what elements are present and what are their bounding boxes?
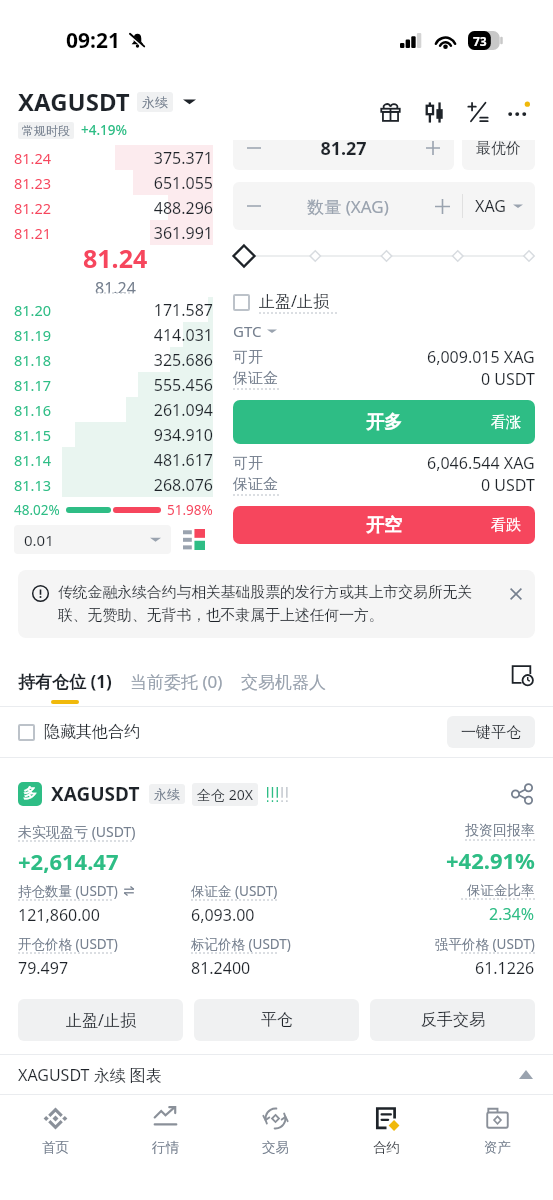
staticText: 保证金: [233, 369, 278, 388]
staticText: 325.686: [52, 349, 213, 371]
staticText: 2.34%: [489, 903, 535, 925]
button[interactable]: 81.27: [233, 140, 454, 170]
staticText: XAGUSDT: [18, 85, 130, 118]
button[interactable]: 开空: [233, 506, 535, 544]
button[interactable]: 81.24: [0, 145, 213, 170]
staticText: 79.497: [18, 957, 69, 979]
staticText: 平仓: [261, 1010, 293, 1030]
button[interactable]: 数量 (XAG): [233, 182, 535, 230]
staticText: 行情: [152, 1139, 179, 1156]
button[interactable]: Share position: [509, 781, 535, 807]
staticText: 6,009.015 XAG: [427, 346, 535, 368]
button[interactable]: GTC: [233, 321, 277, 341]
button[interactable]: 持有仓位 (1): [18, 670, 112, 704]
button[interactable]: 81.22: [0, 195, 213, 220]
staticText: 81.19: [14, 325, 52, 345]
staticText: 81.13: [14, 475, 52, 495]
staticText: 开空: [366, 514, 402, 537]
staticText: 261.094: [52, 399, 213, 421]
staticText: 09:21: [66, 26, 120, 55]
button[interactable]: Rewards: [374, 96, 406, 128]
staticText: 81.22: [14, 198, 52, 218]
staticText: 保证金 (USDT): [191, 882, 278, 900]
button[interactable]: 一键平仓: [447, 716, 535, 748]
button[interactable]: 止盈/止损: [18, 999, 183, 1041]
staticText: 未实现盈亏 (USDT): [18, 822, 136, 841]
staticText: 投资回报率: [465, 822, 535, 840]
button[interactable]: 最优价: [462, 140, 535, 170]
button[interactable]: 81.18: [0, 347, 213, 372]
button[interactable]: 平仓: [194, 999, 359, 1041]
staticText: 268.076: [52, 474, 213, 496]
button[interactable]: Close notice: [507, 585, 525, 603]
staticText: 强平价格 (USDT): [435, 935, 535, 953]
staticText: 81.24: [95, 277, 136, 293]
button[interactable]: Chart: [418, 96, 450, 128]
button[interactable]: Depth display mode: [183, 529, 205, 550]
button[interactable]: 交易机器人: [241, 683, 326, 704]
staticText: 交易: [262, 1139, 289, 1156]
button[interactable]: Calculator: [462, 96, 494, 128]
button[interactable]: 行情: [110, 1095, 220, 1200]
button[interactable]: 81.13: [0, 472, 213, 497]
staticText: 保证金比率: [467, 882, 535, 899]
button[interactable]: 隐藏其他合约: [18, 722, 140, 742]
staticText: 651.055: [52, 172, 213, 194]
button[interactable]: 反手交易: [370, 999, 535, 1041]
staticText: 资产: [484, 1139, 511, 1156]
staticText: 81.17: [14, 375, 52, 395]
button[interactable]: 81.17: [0, 372, 213, 397]
staticText: 首页: [42, 1139, 69, 1156]
staticText: 48.02%: [14, 501, 60, 519]
button[interactable]: Order history: [509, 662, 535, 688]
button[interactable]: 合约: [331, 1095, 442, 1200]
staticText: 81.24: [14, 148, 52, 168]
button[interactable]: 0.01: [14, 525, 171, 554]
staticText: 止盈/止损: [66, 1009, 136, 1031]
button[interactable]: More options: [502, 96, 534, 128]
staticText: 多: [23, 785, 37, 803]
button[interactable]: 81.23: [0, 170, 213, 195]
staticText: 保证金: [233, 475, 278, 494]
staticText: 81.14: [14, 450, 52, 470]
staticText: 永续: [142, 94, 168, 110]
staticText: 永续: [154, 786, 180, 802]
button[interactable]: 首页: [0, 1095, 110, 1200]
button[interactable]: 开多: [233, 400, 535, 444]
staticText: 934.910: [52, 424, 213, 446]
staticText: 488.296: [52, 197, 213, 219]
staticText: 看跌: [491, 516, 521, 535]
button[interactable]: 81.14: [0, 447, 213, 472]
staticText: XAGUSDT 永续 图表: [18, 1064, 162, 1086]
staticText: 看涨: [491, 413, 521, 432]
staticText: 361.991: [52, 222, 213, 244]
staticText: 传统金融永续合约与相关基础股票的发行方或其上市交易所无关联、无赞助、无背书，也不…: [58, 583, 489, 625]
staticText: 隐藏其他合约: [44, 722, 140, 742]
button[interactable]: XAGUSDT 永续 图表: [0, 1055, 553, 1094]
button[interactable]: 81.16: [0, 397, 213, 422]
staticText: 数量 (XAG): [261, 195, 435, 218]
button[interactable]: 止盈/止损: [233, 290, 337, 314]
staticText: 开多: [366, 411, 402, 434]
staticText: 0 USDT: [481, 368, 535, 390]
staticText: 可开: [233, 454, 263, 473]
staticText: 81.24: [83, 241, 148, 275]
staticText: 481.617: [52, 449, 213, 471]
staticText: 反手交易: [421, 1010, 485, 1030]
staticText: 81.23: [14, 173, 52, 193]
button[interactable]: 81.21: [0, 220, 213, 245]
staticText: 81.21: [14, 223, 52, 243]
button[interactable]: 当前委托 (0): [130, 681, 223, 704]
button[interactable]: 81.19: [0, 322, 213, 347]
staticText: 121,860.00: [18, 904, 100, 926]
button[interactable]: 资产: [442, 1095, 553, 1200]
staticText: 合约: [373, 1139, 400, 1156]
staticText: 持仓数量 (USDT): [18, 882, 118, 900]
button[interactable]: 81.15: [0, 422, 213, 447]
staticText: XAG: [475, 195, 506, 217]
button[interactable]: 81.20: [0, 297, 213, 322]
staticText: 414.031: [52, 324, 213, 346]
button[interactable]: 交易: [220, 1095, 331, 1200]
staticText: 81.2400: [191, 957, 251, 979]
staticText: 81.27: [261, 140, 426, 161]
